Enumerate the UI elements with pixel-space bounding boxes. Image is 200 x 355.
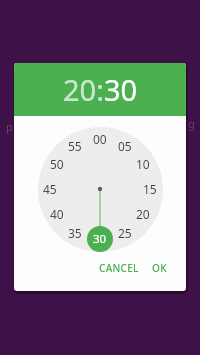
- staticText: 25: [118, 225, 132, 239]
- button[interactable]: OK: [146, 255, 173, 280]
- staticText: 05: [118, 138, 132, 152]
- staticText: 45: [43, 181, 57, 195]
- staticText: 15: [143, 181, 157, 195]
- staticText: 50: [50, 156, 64, 170]
- staticText: CANCEL: [99, 261, 139, 275]
- staticText: p: [6, 119, 13, 134]
- staticText: 10: [136, 156, 150, 170]
- staticText: 20:: [63, 70, 104, 109]
- button[interactable]: 30: [87, 226, 113, 252]
- staticText: 55: [68, 138, 82, 152]
- staticText: g: [188, 116, 195, 131]
- button[interactable]: 20:: [14, 63, 186, 116]
- staticText: 00: [93, 131, 107, 145]
- staticText: 40: [50, 206, 64, 220]
- staticText: 30: [104, 70, 138, 109]
- staticText: 20: [136, 206, 150, 220]
- staticText: 30: [93, 231, 107, 247]
- staticText: OK: [152, 261, 167, 275]
- staticText: 35: [68, 225, 82, 239]
- button[interactable]: CANCEL: [98, 255, 139, 280]
